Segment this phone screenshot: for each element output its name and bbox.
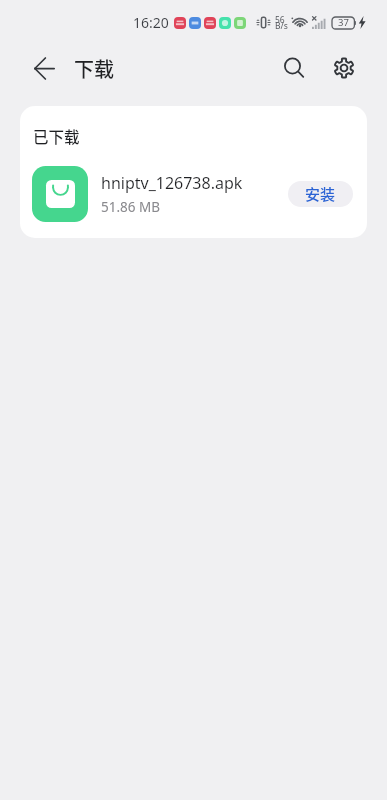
button[interactable]: Search — [272, 46, 316, 90]
staticText: 下载 — [74, 54, 114, 83]
button[interactable]: Settings — [322, 46, 366, 90]
staticText: 51.86 MB — [101, 198, 161, 216]
staticText: 561 — [275, 14, 289, 27]
staticText: 已下载 — [33, 125, 80, 147]
staticText: 16:20 — [133, 13, 169, 32]
staticText: B/s — [275, 20, 288, 32]
staticText: hniptv_126738.apk — [101, 172, 243, 194]
staticText: 37 — [338, 16, 349, 29]
button[interactable]: Back — [22, 46, 66, 90]
button[interactable]: 安装 — [288, 181, 353, 207]
staticText: 安装 — [305, 183, 336, 205]
